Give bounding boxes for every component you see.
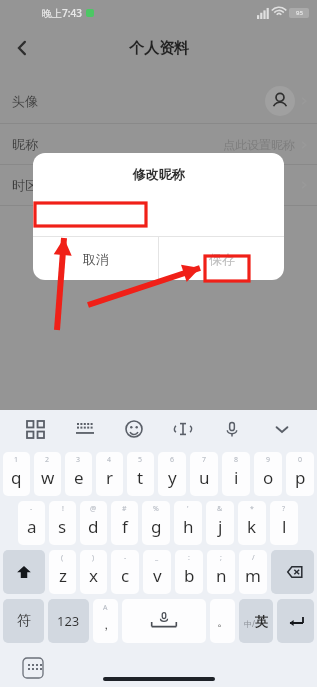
staticText: 个人资料 [129,39,189,58]
button[interactable] [277,599,314,643]
button[interactable]: 符 [3,599,44,643]
button[interactable]: ! [49,501,76,545]
staticText: 4 [107,455,112,465]
button[interactable]: - [111,550,139,594]
staticText: 时区 [12,177,38,193]
staticText: 9 [266,455,271,465]
button[interactable]: 2 [34,452,61,496]
staticText: l [282,515,287,538]
button[interactable]: Keyboard [67,411,103,447]
button[interactable]: 9 [254,452,282,496]
button[interactable]: * [238,501,266,545]
button[interactable]: 0 [286,452,314,496]
staticText: g [151,515,162,538]
button[interactable] [122,599,206,643]
staticText: 头像 [12,93,38,109]
button[interactable]: # [111,501,138,545]
staticText: x [89,564,98,587]
staticText: 123 [57,612,80,630]
button[interactable]: 1 [3,452,30,496]
button[interactable]: ? [270,501,298,545]
staticText: _ [155,553,159,563]
staticText: k [247,515,257,538]
button[interactable]: 3 [65,452,92,496]
button[interactable]: ， [93,599,118,643]
button[interactable]: 123 [48,599,89,643]
staticText: 7 [202,455,207,465]
staticText: v [153,564,162,587]
staticText: q [11,466,22,489]
staticText: e [74,466,84,489]
button[interactable]: 5 [127,452,154,496]
button[interactable]: Hide keyboard [264,411,300,447]
button[interactable]: 头像 [0,78,317,123]
staticText: ， [100,617,112,632]
staticText: 。 [217,614,229,629]
button[interactable]: 取消 [33,237,158,280]
button[interactable]: Voice input [214,411,250,447]
staticText: h [183,515,194,538]
staticText: y [168,466,177,489]
button[interactable]: ; [207,550,235,594]
button[interactable]: & [206,501,234,545]
staticText: ? [282,504,286,514]
staticText: s [58,515,67,538]
staticText: j [218,515,223,538]
staticText: 1 [14,455,19,465]
staticText: 5 [138,455,143,465]
staticText: r [106,466,114,489]
staticText: 昵称 [12,136,38,152]
button[interactable]: _ [143,550,171,594]
staticText: ' [187,504,189,514]
button[interactable]: 。 [210,599,235,643]
button[interactable]: @ [80,501,107,545]
button[interactable]: Text edit [165,411,201,447]
staticText: 2 [45,455,50,465]
staticText: - [30,504,33,514]
staticText: w [41,466,55,489]
staticText: : [188,553,190,563]
staticText: @ [90,504,97,514]
staticText: 保存 [209,251,235,267]
button[interactable]: Apps [17,411,53,447]
staticText: o [263,466,274,489]
button[interactable]: % [142,501,170,545]
button[interactable]: 昵称 [0,124,317,164]
button[interactable]: - [18,501,45,545]
button[interactable]: Switch keyboard [22,657,44,679]
button[interactable] [3,550,45,594]
button[interactable]: 保存 [159,237,284,280]
button[interactable]: 7 [190,452,218,496]
staticText: 修改昵称 [33,166,284,182]
button[interactable]: 8 [222,452,250,496]
staticText: 符 [17,612,31,630]
staticText: 取消 [83,251,109,267]
button[interactable]: Back [0,26,44,70]
button[interactable]: 时区 [0,165,317,205]
staticText: n [216,564,227,587]
staticText: ( [61,553,64,563]
button[interactable]: Emoji [116,411,152,447]
staticText: m [245,564,261,587]
button[interactable]: 4 [96,452,123,496]
staticText: ! [62,504,64,514]
staticText: 点此设置昵称 [223,137,295,152]
staticText: 0 [298,455,303,465]
staticText: 6 [170,455,175,465]
staticText: / [252,553,255,563]
staticText: u [199,466,210,489]
button[interactable]: ( [49,550,76,594]
staticText: d [88,515,99,538]
staticText: 95 [296,9,303,17]
button[interactable]: 中/ [239,599,273,643]
button[interactable]: / [239,550,267,594]
button[interactable]: 6 [158,452,186,496]
staticText: i [234,466,239,489]
staticText: a [27,515,37,538]
button[interactable]: ' [174,501,202,545]
staticText: 英 [255,613,268,629]
button[interactable] [271,550,314,594]
staticText: # [122,504,127,514]
button[interactable]: : [175,550,203,594]
button[interactable]: ) [80,550,107,594]
